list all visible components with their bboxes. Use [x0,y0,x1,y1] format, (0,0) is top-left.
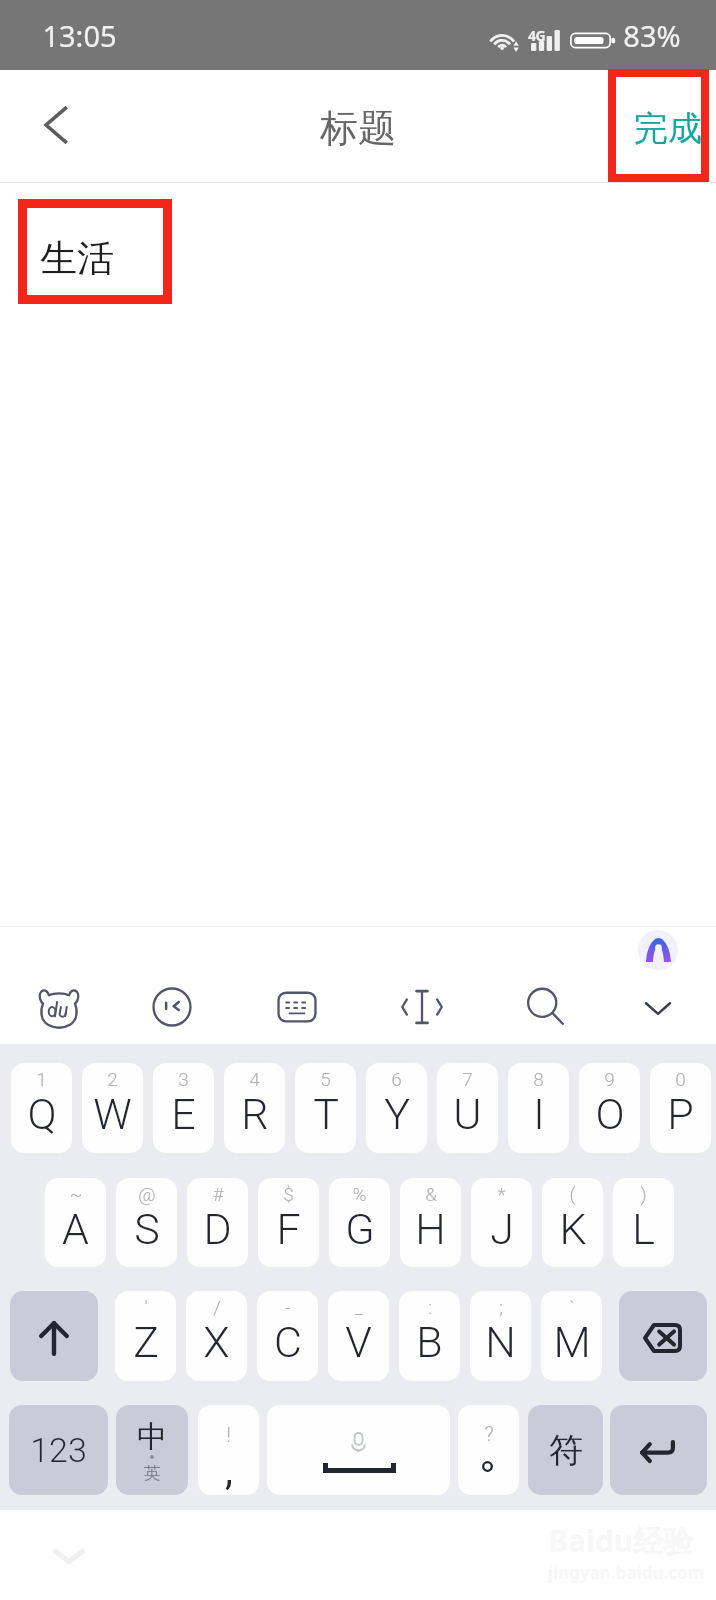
staticText: 6 [391,1068,402,1090]
staticText: E [171,1089,196,1139]
button[interactable]: Bear sticker [23,971,95,1043]
staticText: 83% [623,16,681,55]
button[interactable]: 3 [153,1063,214,1153]
button[interactable]: Period [458,1405,519,1495]
button[interactable]: & [400,1178,461,1267]
staticText: * [497,1183,506,1205]
staticText: - [285,1296,291,1318]
button[interactable]: Symbols [528,1405,603,1495]
button[interactable]: ~ [45,1178,106,1267]
button[interactable]: ` [541,1291,602,1381]
staticText: R [241,1089,269,1139]
staticText: F [276,1204,301,1254]
button[interactable]: 8 [508,1063,569,1153]
button[interactable]: Keyboard layout [261,971,333,1043]
button[interactable]: Comma [198,1405,259,1495]
staticText: ( [569,1183,576,1205]
button[interactable]: 4 [224,1063,285,1153]
staticText: 1 [36,1068,47,1090]
staticText: Y [384,1089,410,1139]
staticText: 4 [249,1068,260,1090]
staticText: , [225,1447,233,1494]
button[interactable]: Hide keyboard [622,971,694,1043]
button[interactable]: 生活 [27,208,163,295]
staticText: ! [226,1423,231,1448]
staticText: ; [499,1296,503,1318]
button[interactable]: : [399,1291,460,1381]
staticText: # [212,1183,224,1205]
staticText: O [595,1089,625,1139]
button[interactable]: Numbers [9,1405,108,1495]
staticText: V [345,1317,372,1367]
button[interactable]: Emoji [136,971,208,1043]
staticText: K [559,1204,587,1254]
staticText: P [667,1089,694,1139]
button[interactable]: 9 [579,1063,640,1153]
staticText: A [62,1204,89,1254]
staticText: 生活 [40,235,114,282]
staticText: ` [569,1296,575,1318]
button[interactable]: 5 [295,1063,356,1153]
button[interactable]: @ [116,1178,177,1267]
staticText: B [416,1317,443,1367]
staticText: 0 [675,1068,686,1090]
button[interactable]: # [187,1178,248,1267]
staticText: J [490,1204,514,1254]
staticText: 2 [107,1068,118,1090]
staticText: H [415,1204,446,1254]
button[interactable]: AI assistant [638,930,678,970]
button[interactable]: Search [510,971,582,1043]
button[interactable]: ' [115,1291,176,1381]
staticText: 123 [30,1430,87,1470]
other: Collapse [52,1546,86,1568]
staticText: C [274,1317,302,1367]
button[interactable]: 1 [11,1063,72,1153]
staticText: Q [27,1089,57,1139]
staticText: % [352,1183,367,1205]
button[interactable]: Move cursor [386,971,458,1043]
staticText: M [553,1317,591,1367]
staticText: 中 [137,1418,167,1456]
button[interactable]: Back [0,70,112,183]
button[interactable]: $ [258,1178,319,1267]
staticText: 13:05 [42,16,117,55]
button[interactable]: _ [328,1291,389,1381]
button[interactable]: * [471,1178,532,1267]
staticText: 3 [178,1068,189,1090]
staticText: ? [484,1422,494,1447]
staticText: 8 [533,1068,544,1090]
staticText: X [203,1317,230,1367]
staticText: @ [138,1183,156,1205]
staticText: L [632,1204,655,1254]
button[interactable]: Backspace [619,1291,707,1381]
staticText: ~ [69,1183,83,1205]
staticText: 符 [549,1429,583,1472]
button[interactable]: Shift [10,1291,98,1381]
button[interactable]: - [257,1291,318,1381]
button[interactable]: 6 [366,1063,427,1153]
button[interactable]: 0 [650,1063,711,1153]
staticText: 4G [528,26,546,45]
staticText: 完成 [634,107,702,150]
button[interactable]: Enter [610,1405,707,1495]
button[interactable]: ; [470,1291,531,1381]
button[interactable]: 7 [437,1063,498,1153]
button[interactable]: / [186,1291,247,1381]
staticText: U [453,1089,482,1139]
button[interactable]: ( [542,1178,603,1267]
staticText: G [345,1204,375,1254]
staticText: & [425,1183,437,1205]
staticText: 标题 [320,104,396,152]
staticText: Z [133,1317,159,1367]
button[interactable]: ) [613,1178,674,1267]
staticText: W [93,1089,132,1139]
button[interactable]: 2 [82,1063,143,1153]
staticText: Baidu经验 [548,1520,694,1561]
button[interactable]: 完成 [616,77,701,174]
staticText: 英 [144,1463,161,1484]
staticText: 9 [604,1068,615,1090]
button[interactable]: Space [267,1405,450,1495]
staticText: D [203,1204,232,1254]
button[interactable]: % [329,1178,390,1267]
button[interactable]: Chinese English [116,1405,188,1495]
